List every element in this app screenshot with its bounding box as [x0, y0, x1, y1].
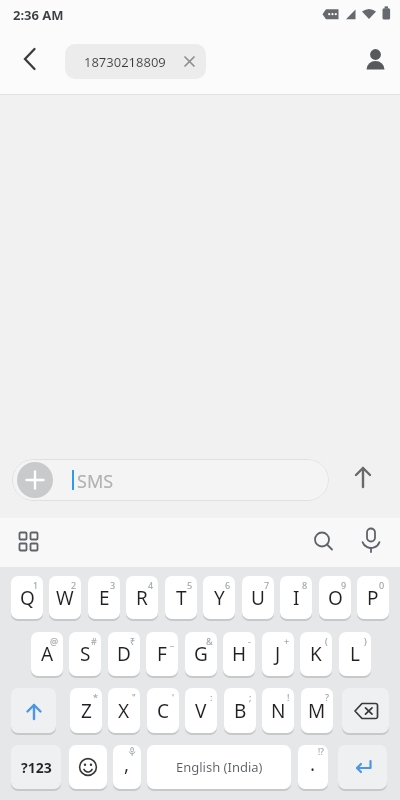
button[interactable]: K [300, 632, 332, 676]
staticText: J [275, 641, 281, 667]
button[interactable]: J [262, 632, 294, 676]
staticText: 8 [302, 579, 308, 591]
staticText: B [234, 698, 247, 724]
button[interactable] [12, 46, 40, 74]
staticText: E [99, 585, 110, 611]
staticText: ; [249, 691, 252, 703]
button[interactable]: D [108, 632, 140, 676]
staticText: * [93, 691, 98, 703]
staticText: X [118, 698, 130, 724]
staticText: : [210, 691, 213, 703]
staticText: English (India) [176, 758, 263, 776]
staticText: + [284, 635, 290, 647]
staticText: W [56, 585, 74, 611]
button[interactable]: 18730218809 [65, 44, 206, 79]
button[interactable]: W [49, 576, 81, 619]
button[interactable]: U [242, 576, 274, 619]
button[interactable]: F [146, 632, 178, 676]
staticText: ' [172, 691, 175, 703]
button[interactable]: E [88, 576, 120, 619]
staticText: 1 [33, 579, 39, 591]
button[interactable] [69, 745, 107, 789]
button[interactable]: C [147, 688, 179, 733]
staticText: . [310, 751, 316, 777]
staticText: S [80, 641, 91, 667]
staticText: 2 [71, 579, 77, 591]
staticText: M [308, 698, 326, 724]
staticText: I [293, 585, 300, 611]
staticText: " [132, 691, 136, 703]
staticText: C [157, 698, 170, 724]
button[interactable]: Z [70, 688, 102, 733]
staticText: K [310, 641, 322, 667]
button[interactable]: A [31, 632, 63, 676]
staticText: G [194, 641, 208, 667]
staticText: , [124, 751, 130, 777]
button[interactable] [357, 527, 385, 557]
staticText: - [248, 635, 251, 647]
staticText: 4 [148, 579, 154, 591]
staticText: P [367, 585, 379, 611]
staticText: R [136, 585, 148, 611]
staticText: U [251, 585, 265, 611]
button[interactable]: Q [11, 576, 43, 619]
staticText: SMS [77, 469, 114, 494]
staticText: @ [50, 635, 59, 647]
staticText: ? [325, 691, 329, 703]
staticText: 0 [379, 579, 385, 591]
staticText: !? [318, 746, 324, 757]
staticText: Z [81, 698, 92, 724]
staticText: F [157, 641, 167, 667]
staticText: _ [170, 635, 174, 647]
staticText: 3 [110, 579, 116, 591]
button[interactable]: G [185, 632, 217, 676]
staticText: D [117, 641, 131, 667]
button[interactable] [338, 745, 387, 789]
button[interactable]: O [319, 576, 351, 619]
button[interactable]: . [298, 745, 328, 789]
button[interactable] [11, 688, 56, 733]
staticText: ₹ [130, 635, 136, 647]
button[interactable]: T [165, 576, 197, 619]
button[interactable]: P [357, 576, 389, 619]
staticText: N [271, 698, 286, 724]
button[interactable]: B [224, 688, 256, 733]
button[interactable]: , [113, 745, 141, 789]
staticText: ?123 [21, 758, 52, 777]
button[interactable]: English (India) [147, 745, 291, 789]
staticText: O [328, 585, 343, 611]
button[interactable]: N [262, 688, 294, 733]
button[interactable] [10, 528, 48, 556]
button[interactable]: ?123 [11, 745, 61, 789]
button[interactable]: M [301, 688, 333, 733]
staticText: Q [20, 585, 35, 611]
button[interactable]: R [126, 576, 158, 619]
staticText: ) [364, 635, 367, 647]
button[interactable]: S [69, 632, 101, 676]
button[interactable] [360, 42, 392, 74]
button[interactable]: L [339, 632, 371, 676]
button[interactable]: V [185, 688, 217, 733]
staticText: 7 [264, 579, 270, 591]
button[interactable] [12, 459, 329, 501]
staticText: ( [325, 635, 328, 647]
staticText: Y [214, 585, 225, 611]
button[interactable]: I [280, 576, 312, 619]
staticText: 5 [187, 579, 193, 591]
staticText: V [195, 698, 207, 724]
staticText: 18730218809 [84, 53, 166, 71]
button[interactable] [348, 463, 378, 493]
button[interactable] [17, 462, 53, 498]
button[interactable]: X [108, 688, 140, 733]
staticText: # [91, 635, 97, 647]
button[interactable] [342, 688, 389, 733]
button[interactable]: H [223, 632, 255, 676]
staticText: & [206, 635, 213, 647]
staticText: 2:36 AM [13, 6, 64, 24]
staticText: L [350, 641, 360, 667]
staticText: A [41, 641, 54, 667]
button[interactable]: Y [203, 576, 235, 619]
staticText: H [232, 641, 247, 667]
staticText: 9 [341, 579, 347, 591]
button[interactable] [309, 528, 337, 556]
